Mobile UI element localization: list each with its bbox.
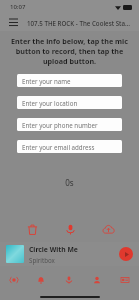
button[interactable]: Enter your name xyxy=(17,74,122,87)
staticText: Enter your email address xyxy=(22,143,95,151)
staticText: Enter the info below, tap the mic button… xyxy=(11,36,128,66)
staticText: 107.5 THE ROCK - The Coolest Station... xyxy=(27,19,132,27)
button[interactable]: Circle With Me xyxy=(0,242,139,266)
button[interactable]: Open navigation menu xyxy=(7,16,20,29)
button[interactable]: Alerts xyxy=(27,266,55,294)
button[interactable]: News xyxy=(111,266,139,294)
button[interactable]: Play xyxy=(119,247,133,261)
button[interactable]: Upload recording xyxy=(95,216,121,242)
staticText: Enter your name xyxy=(22,77,71,85)
button[interactable]: Delete recording xyxy=(19,216,45,242)
staticText: 0s xyxy=(0,177,139,188)
button[interactable]: Record xyxy=(55,266,83,294)
staticText: Spiritbox xyxy=(29,256,55,264)
button[interactable]: Record with microphone xyxy=(57,216,83,242)
button[interactable]: Profile xyxy=(83,266,111,294)
button[interactable]: Enter your email address xyxy=(17,140,122,153)
button[interactable]: Enter your phone number xyxy=(17,118,122,131)
button[interactable]: Enter your location xyxy=(17,96,122,109)
staticText: Enter your location xyxy=(22,99,78,107)
staticText: Enter your phone number xyxy=(22,121,98,129)
staticText: 10:07 xyxy=(10,3,26,11)
staticText: Circle With Me xyxy=(29,245,78,254)
button[interactable]: Radio xyxy=(0,266,27,294)
